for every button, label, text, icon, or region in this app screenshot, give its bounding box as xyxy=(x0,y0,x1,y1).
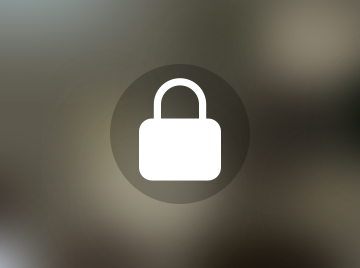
button[interactable]: Locked content xyxy=(0,0,360,268)
